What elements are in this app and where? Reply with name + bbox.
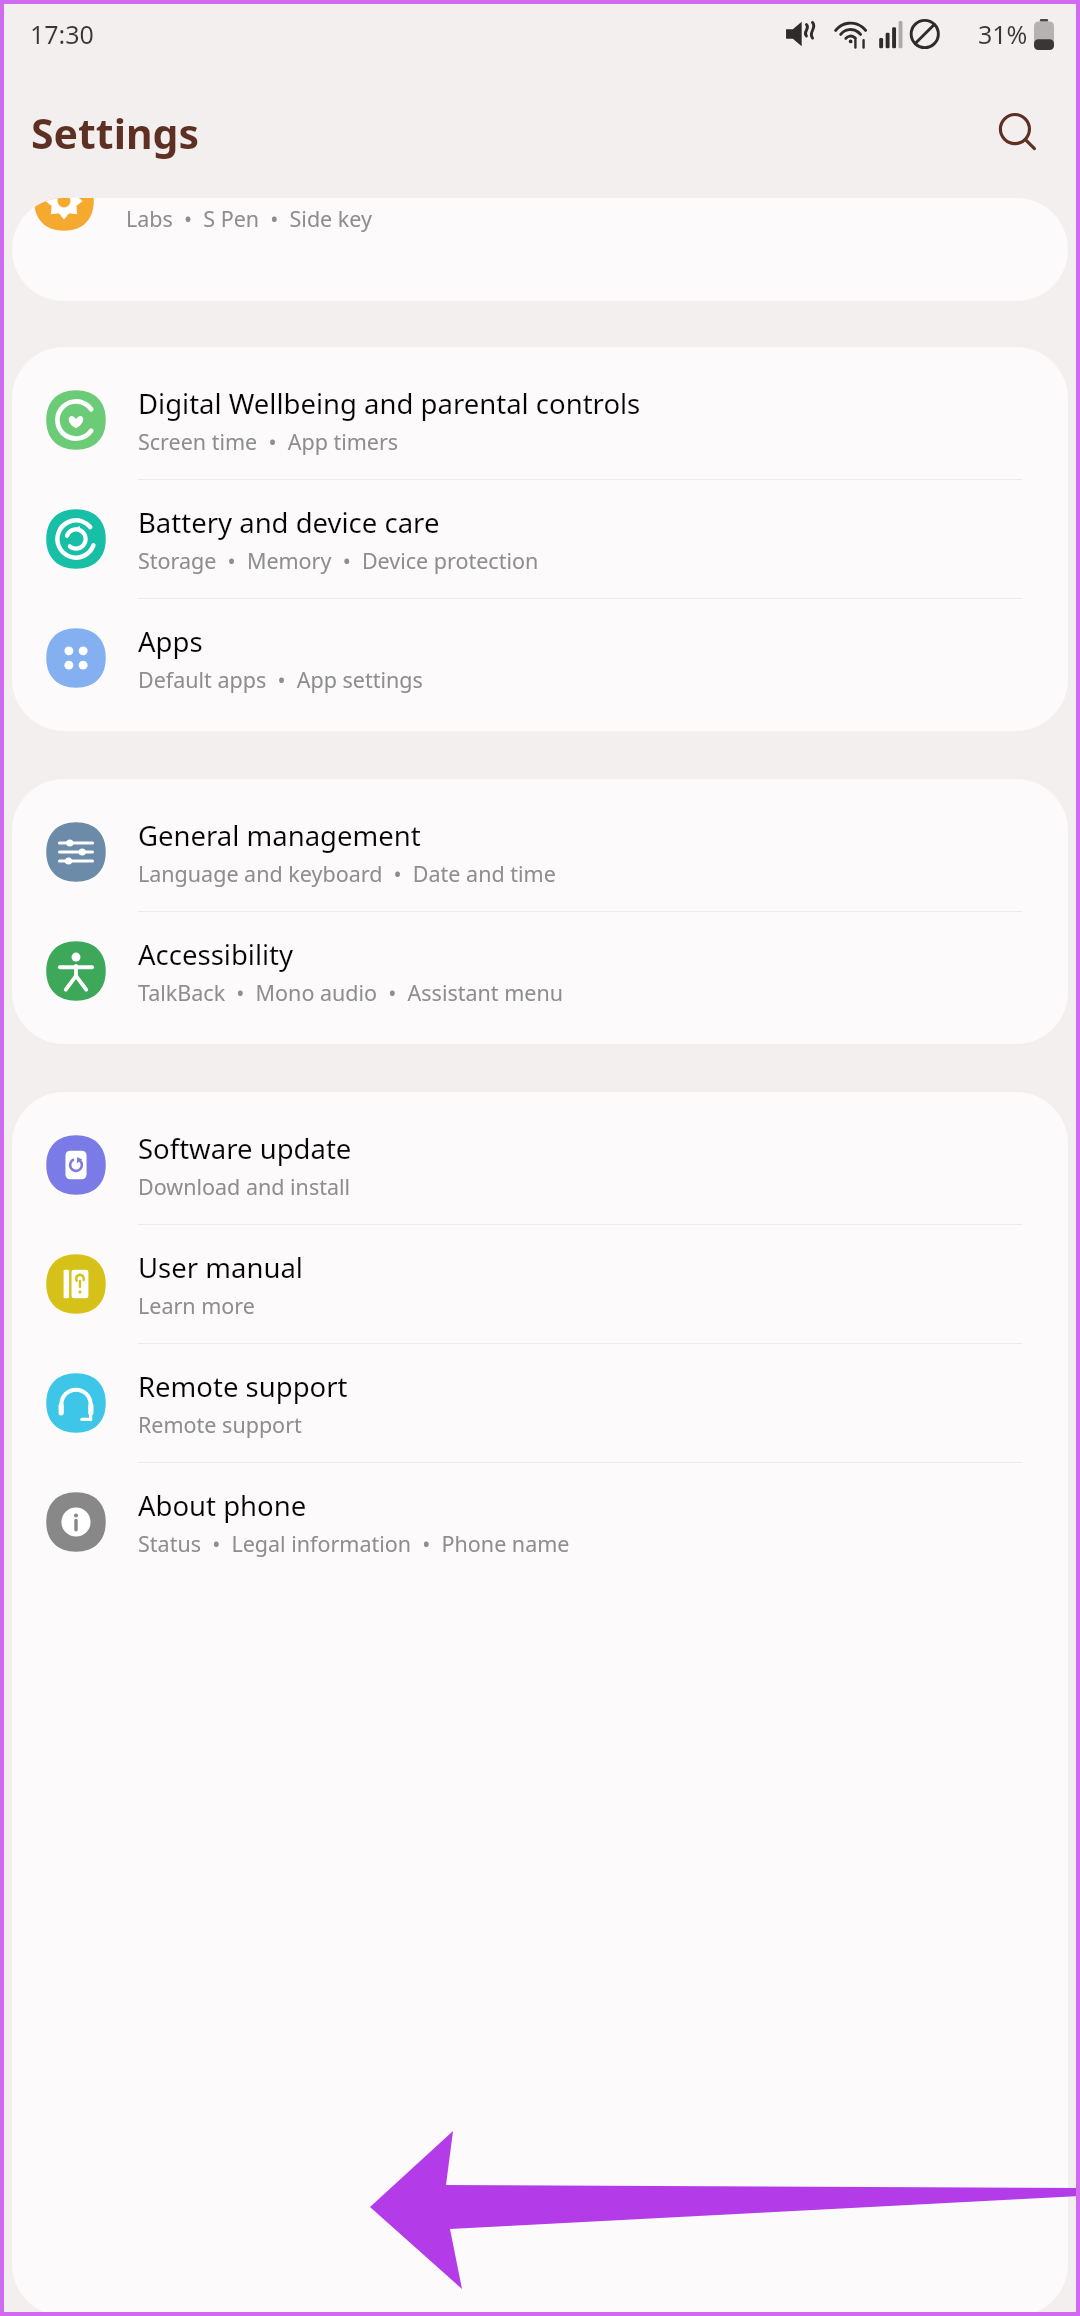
- staticText: Digital Wellbeing and parental controls: [138, 385, 641, 422]
- button[interactable]: Labs • S Pen • Side key: [12, 198, 1068, 301]
- staticText: TalkBack • Mono audio • Assistant menu: [138, 978, 564, 1007]
- staticText: Storage • Memory • Device protection: [138, 546, 539, 575]
- staticText: Status • Legal information • Phone name: [138, 1529, 570, 1558]
- staticText: Download and install: [138, 1172, 351, 1201]
- staticText: Settings: [31, 105, 200, 161]
- staticText: Labs • S Pen • Side key: [126, 204, 372, 233]
- button[interactable]: User manual: [12, 1225, 1068, 1343]
- staticText: About phone: [138, 1487, 307, 1524]
- button[interactable]: Digital Wellbeing and parental controls: [12, 361, 1068, 479]
- button[interactable]: Remote support: [12, 1344, 1068, 1462]
- staticText: General management: [138, 817, 421, 854]
- button[interactable]: Accessibility: [12, 912, 1068, 1030]
- staticText: Remote support: [138, 1368, 348, 1405]
- staticText: Battery and device care: [138, 504, 440, 541]
- staticText: Language and keyboard • Date and time: [138, 859, 556, 888]
- staticText: 17:30: [30, 17, 94, 51]
- staticText: Apps: [138, 623, 203, 660]
- staticText: User manual: [138, 1249, 303, 1286]
- staticText: Default apps • App settings: [138, 665, 423, 694]
- staticText: Remote support: [138, 1410, 302, 1439]
- staticText: Accessibility: [138, 936, 294, 973]
- staticText: Learn more: [138, 1291, 255, 1320]
- button[interactable]: Software update: [12, 1106, 1068, 1224]
- staticText: 31%: [978, 17, 1028, 51]
- button[interactable]: Battery and device care: [12, 480, 1068, 598]
- staticText: Software update: [138, 1130, 352, 1167]
- button[interactable]: About phone: [12, 1463, 1068, 1581]
- staticText: Screen time • App timers: [138, 427, 399, 456]
- button[interactable]: Apps: [12, 599, 1068, 717]
- button[interactable]: Search: [982, 97, 1054, 169]
- button[interactable]: General management: [12, 793, 1068, 911]
